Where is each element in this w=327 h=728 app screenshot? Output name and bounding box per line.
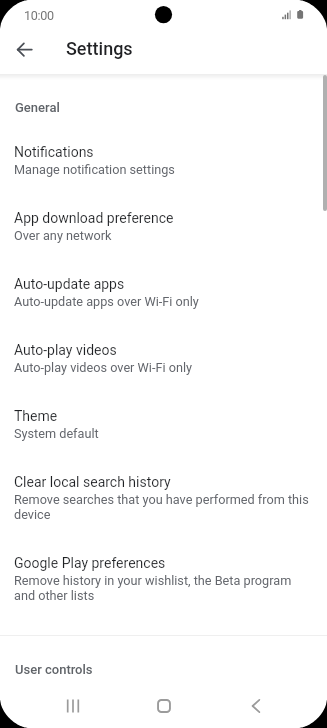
button[interactable]: Back	[240, 690, 272, 722]
staticText: User controls	[15, 662, 93, 677]
button[interactable]: Notifications	[0, 132, 327, 198]
staticText: Settings	[66, 38, 133, 59]
button[interactable]: Auto-play videos	[0, 330, 327, 396]
staticText: Auto-play videos over Wi-Fi only	[14, 361, 192, 376]
staticText: Google Play preferences	[14, 552, 166, 572]
staticText: Notifications	[14, 141, 94, 161]
staticText: Over any network	[14, 229, 112, 244]
button[interactable]: Navigate up	[5, 30, 43, 68]
staticText: Remove history in your wishlist, the Bet…	[14, 574, 311, 604]
staticText: Theme	[14, 405, 58, 425]
staticText: Auto-update apps over Wi-Fi only	[14, 295, 199, 310]
staticText: Auto-play videos	[14, 339, 117, 359]
staticText: System default	[14, 427, 99, 442]
button[interactable]: Recent apps	[57, 690, 89, 722]
staticText: 10:00	[24, 8, 54, 23]
button[interactable]: Auto-update apps	[0, 264, 327, 330]
button[interactable]: App download preference	[0, 198, 327, 264]
staticText: Remove searches that you have performed …	[14, 493, 311, 523]
staticText: Clear local search history	[14, 471, 171, 491]
staticText: Auto-update apps	[14, 273, 125, 293]
staticText: Manage notification settings	[14, 163, 175, 178]
button[interactable]: Home	[148, 690, 180, 722]
staticText: General	[15, 100, 60, 115]
staticText: App download preference	[14, 207, 174, 227]
button[interactable]: Clear local search history	[0, 462, 327, 543]
button[interactable]: Google Play preferences	[0, 543, 327, 624]
button[interactable]: Theme	[0, 396, 327, 462]
